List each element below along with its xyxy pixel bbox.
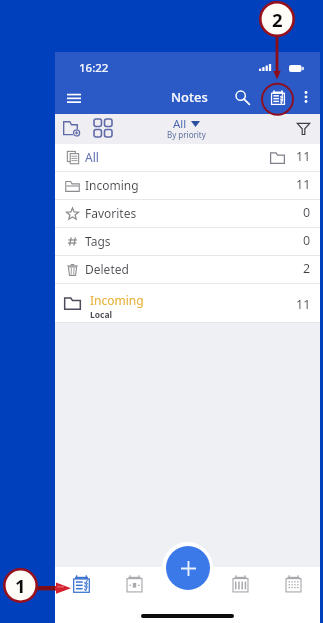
staticText: Deleted [85,261,129,277]
button[interactable]: All [167,116,206,143]
staticText: All [85,149,99,165]
staticText: 2 [272,7,283,32]
button[interactable]: Month view [267,567,320,601]
staticText: 2 [303,260,311,277]
button[interactable]: Favorites [55,200,320,227]
button[interactable]: Grid view [92,117,114,139]
staticText: Tags [85,233,111,249]
button[interactable]: Week view [214,567,267,601]
staticText: All [173,116,187,132]
button[interactable]: Navigation menu [63,86,85,108]
button[interactable]: Agenda view [267,86,289,108]
button[interactable]: More options [296,87,316,107]
staticText: Notes [171,88,208,106]
staticText: 0 [303,232,311,249]
staticText: 11 [296,148,311,165]
staticText: 11 [296,296,311,313]
button[interactable]: Add note [166,546,210,590]
staticText: 11 [296,176,311,193]
staticText: Incoming [85,177,139,193]
button[interactable]: Incoming [55,284,320,322]
button[interactable]: Incoming [55,172,320,199]
button[interactable]: Search [231,86,254,109]
staticText: 1 [15,573,26,598]
staticText: 16:22 [79,60,109,76]
staticText: 0 [303,204,311,221]
staticText: Incoming [90,292,144,308]
staticText: Favorites [85,205,137,221]
button[interactable]: Filter [292,117,314,139]
staticText: By priority [167,129,206,140]
button[interactable]: Day view [108,567,161,601]
button[interactable]: Tags [55,228,320,255]
button[interactable]: All [55,144,320,171]
button[interactable]: Agenda [55,567,108,601]
button[interactable]: Deleted [55,256,320,283]
staticText: Local [90,309,113,321]
button[interactable]: New folder [60,116,82,138]
